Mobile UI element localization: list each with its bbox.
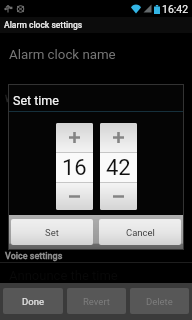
- button[interactable]: Alarm clock name: [0, 43, 192, 67]
- button[interactable]: Increase minutes: [100, 123, 137, 152]
- button[interactable]: Decrease hours: [56, 183, 93, 210]
- button[interactable]: Cancel: [99, 219, 181, 245]
- button[interactable]: Revert: [67, 288, 126, 314]
- button[interactable]: Done: [3, 288, 63, 314]
- button[interactable]: Delete: [130, 288, 189, 314]
- staticText: Alarm clock name: [9, 47, 116, 63]
- staticText: 42: [106, 155, 131, 181]
- button[interactable]: Alarm clock settings: [0, 17, 192, 33]
- staticText: WAKE UP HOUR: [5, 94, 70, 105]
- staticText: Revert: [83, 296, 110, 307]
- staticText: Done: [22, 296, 44, 307]
- staticText: Cancel: [126, 227, 155, 238]
- other: Notifications: [3, 3, 29, 14]
- staticText: Set time: [13, 93, 59, 108]
- button[interactable]: Voice settings: [0, 250, 192, 262]
- button[interactable]: Decrease minutes: [100, 183, 137, 210]
- staticText: Delete: [146, 296, 173, 307]
- staticText: 16:42: [162, 3, 189, 15]
- button[interactable]: Increase hours: [56, 123, 93, 152]
- staticText: Voice settings: [5, 251, 63, 262]
- button[interactable]: WAKE UP HOUR: [0, 93, 192, 105]
- staticText: Set: [45, 227, 59, 238]
- button[interactable]: Set: [11, 219, 93, 245]
- staticText: 16: [62, 155, 87, 181]
- staticText: Alarm clock settings: [4, 20, 83, 30]
